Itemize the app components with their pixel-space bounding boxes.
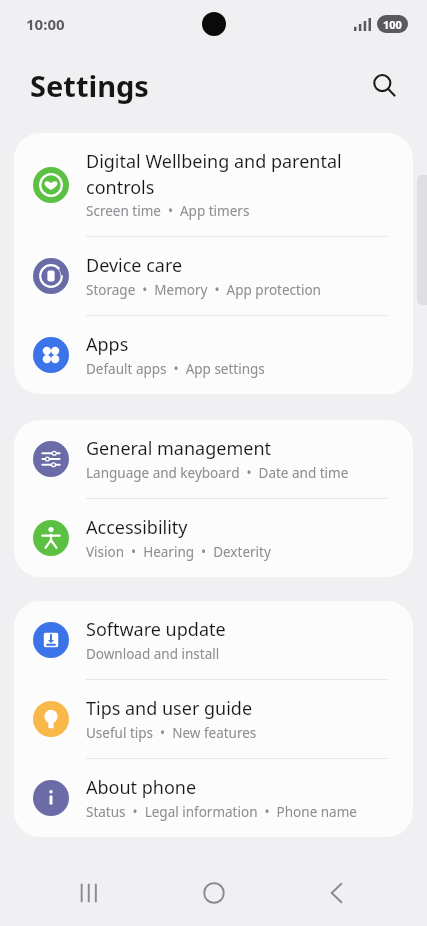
staticText: Screen time • App timers bbox=[86, 202, 250, 220]
button[interactable]: Back bbox=[304, 860, 370, 926]
staticText: 10:00 bbox=[26, 14, 65, 34]
button[interactable]: Home bbox=[181, 860, 247, 926]
staticText: Vision • Hearing • Dexterity bbox=[86, 543, 271, 561]
staticText: About phone bbox=[86, 775, 197, 800]
staticText: Default apps • App settings bbox=[86, 360, 265, 378]
button[interactable]: Search bbox=[361, 62, 407, 108]
button[interactable]: Accessibility bbox=[14, 499, 413, 577]
staticText: Storage • Memory • App protection bbox=[86, 281, 321, 299]
staticText: Language and keyboard • Date and time bbox=[86, 464, 349, 482]
button[interactable]: Apps bbox=[14, 316, 413, 394]
staticText: Settings bbox=[30, 66, 149, 105]
button[interactable]: Device care bbox=[14, 237, 413, 315]
staticText: General management bbox=[86, 436, 272, 461]
button[interactable]: Digital Wellbeing and parental controls bbox=[14, 133, 413, 236]
button[interactable]: General management bbox=[14, 420, 413, 498]
staticText: Software update bbox=[86, 617, 226, 642]
staticText: Device care bbox=[86, 253, 183, 278]
staticText: Status • Legal information • Phone name bbox=[86, 803, 357, 821]
staticText: 100 bbox=[383, 17, 402, 32]
staticText: Download and install bbox=[86, 645, 220, 663]
staticText: Accessibility bbox=[86, 515, 188, 540]
staticText: Apps bbox=[86, 332, 129, 357]
staticText: Useful tips • New features bbox=[86, 724, 257, 742]
staticText: Tips and user guide bbox=[86, 696, 253, 721]
button[interactable]: Recent apps bbox=[57, 860, 123, 926]
button[interactable]: About phone bbox=[14, 759, 413, 837]
button[interactable]: Tips and user guide bbox=[14, 680, 413, 758]
button[interactable]: Software update bbox=[14, 601, 413, 679]
staticText: Digital Wellbeing and parental controls bbox=[86, 149, 342, 199]
